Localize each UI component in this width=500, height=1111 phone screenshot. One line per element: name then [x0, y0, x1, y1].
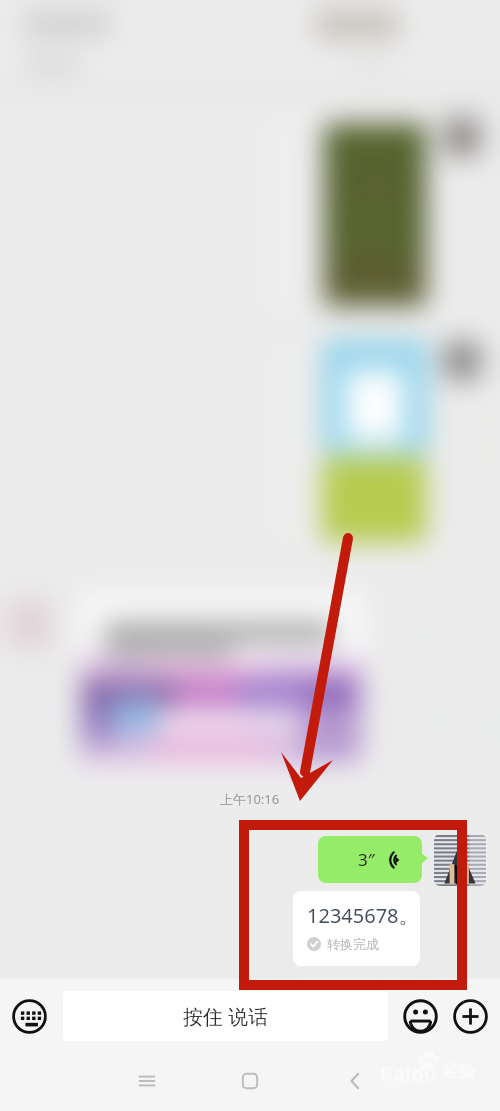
- staticText: 12345678。: [307, 902, 419, 929]
- button[interactable]: Emoji: [403, 999, 438, 1034]
- button[interactable]: Menu: [130, 1064, 164, 1098]
- button[interactable]: Keyboard: [12, 999, 47, 1034]
- staticText: 转换完成: [327, 936, 379, 952]
- button[interactable]: Back: [338, 1064, 372, 1098]
- button[interactable]: Voice message 3 seconds: [318, 836, 428, 883]
- staticText: 上午10:16: [220, 790, 280, 808]
- button[interactable]: Home: [233, 1064, 267, 1098]
- staticText: 3″: [358, 848, 375, 871]
- button[interactable]: More: [453, 999, 488, 1034]
- button[interactable]: 12345678。: [293, 891, 420, 966]
- staticText: 按住 说话: [183, 1003, 269, 1030]
- button[interactable]: 按住 说话: [63, 991, 388, 1041]
- button[interactable]: Contact avatar: [434, 834, 486, 886]
